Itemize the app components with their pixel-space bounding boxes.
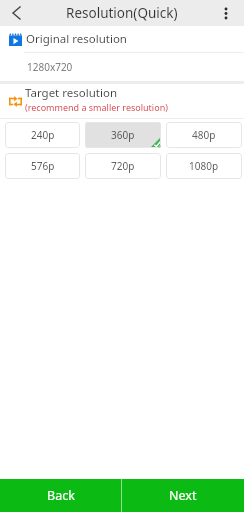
staticText: 1080p bbox=[189, 159, 219, 173]
button[interactable]: Next bbox=[122, 479, 244, 512]
button[interactable]: 1080p bbox=[166, 153, 242, 179]
staticText: 1280x720 bbox=[27, 60, 73, 74]
staticText: 480p bbox=[192, 128, 216, 142]
staticText: Back bbox=[47, 487, 75, 504]
button[interactable]: 240p bbox=[5, 122, 80, 148]
staticText: Next bbox=[169, 487, 197, 504]
staticText: 720p bbox=[111, 159, 135, 173]
staticText: Target resolution bbox=[25, 85, 117, 101]
staticText: 576p bbox=[31, 159, 55, 173]
staticText: (recommend a smaller resolution) bbox=[25, 101, 168, 113]
button[interactable]: Back bbox=[0, 479, 121, 512]
staticText: Resolution(Quick) bbox=[66, 4, 178, 22]
button[interactable]: 480p bbox=[166, 122, 242, 148]
button[interactable]: 576p bbox=[5, 153, 80, 179]
button[interactable]: 360p bbox=[85, 122, 161, 148]
button[interactable]: More options bbox=[208, 0, 244, 26]
button[interactable]: 720p bbox=[85, 153, 161, 179]
staticText: 240p bbox=[31, 128, 55, 142]
staticText: Original resolution bbox=[26, 31, 127, 47]
staticText: 360p bbox=[111, 128, 135, 142]
button[interactable]: Back bbox=[0, 0, 33, 26]
